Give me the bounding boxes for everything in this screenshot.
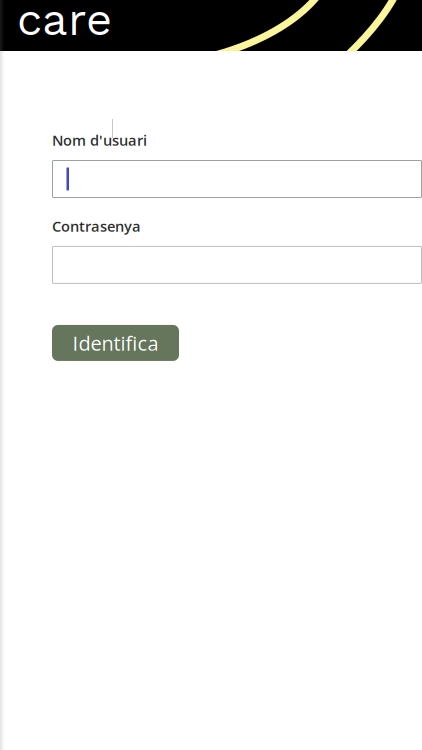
staticText: Contrasenya: [52, 216, 141, 236]
staticText: Identifica: [72, 329, 158, 356]
staticText: care: [17, 0, 112, 46]
staticText: Nom d'usuari: [52, 130, 147, 150]
button[interactable]: Identifica: [52, 325, 179, 361]
